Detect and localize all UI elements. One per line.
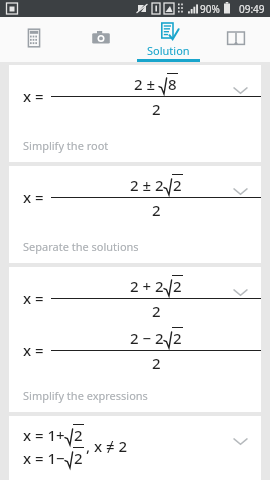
staticText: 2 (74, 425, 83, 445)
staticText: 2 (152, 301, 161, 321)
staticText: x = (23, 86, 44, 106)
staticText: 2 (152, 99, 161, 119)
staticText: x = (23, 340, 44, 360)
staticText: x = 1+ (23, 425, 65, 445)
button[interactable]: Solution (134, 17, 202, 62)
staticText: Simplify the root (23, 138, 109, 153)
button[interactable]: Calculator (0, 17, 67, 62)
staticText: 2 − (130, 328, 152, 348)
staticText: 2 ± (134, 74, 156, 94)
staticText: x = (23, 288, 44, 308)
staticText: 2 (173, 328, 182, 348)
button[interactable]: x = (9, 65, 261, 162)
staticText: 2 + (130, 276, 152, 296)
button[interactable]: Camera (67, 17, 134, 62)
staticText: 2 (74, 448, 83, 468)
staticText: x = 1− (23, 448, 65, 468)
staticText: , x ≠ 2 (86, 436, 128, 456)
staticText: 2 ± (130, 175, 152, 195)
button[interactable]: Dictionary (202, 17, 270, 62)
button[interactable]: x = (9, 267, 261, 412)
staticText: Simplify the expressions (23, 388, 148, 403)
staticText: 2 (173, 175, 182, 195)
staticText: x = (23, 187, 44, 207)
staticText: 2 (155, 175, 164, 195)
button[interactable]: x = 1+ (9, 416, 261, 480)
button[interactable]: x = (9, 166, 261, 263)
staticText: Separate the solutions (23, 239, 139, 254)
staticText: 2 (173, 276, 182, 296)
staticText: 2 (152, 353, 161, 373)
staticText: 90% (200, 2, 220, 16)
staticText: 8 (168, 74, 177, 94)
staticText: Solution (147, 43, 190, 58)
staticText: 2 (155, 328, 164, 348)
staticText: 2 (152, 200, 161, 220)
staticText: 09:49 (239, 2, 265, 16)
staticText: 2 (155, 276, 164, 296)
